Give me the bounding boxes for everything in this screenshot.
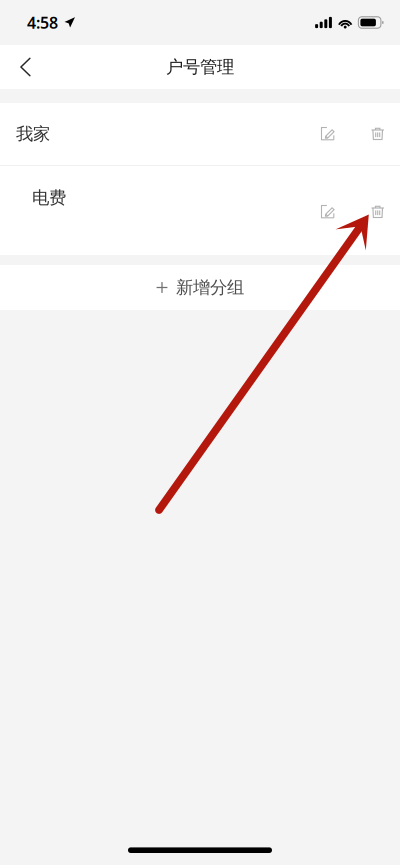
button[interactable]: 编辑	[316, 121, 340, 147]
staticText: 新增分组	[176, 277, 244, 298]
button[interactable]: 删除	[366, 199, 390, 225]
button[interactable]: 新增分组	[0, 265, 400, 310]
button[interactable]: 电费	[0, 166, 400, 255]
button[interactable]: 编辑	[316, 199, 340, 225]
staticText: 我家	[16, 123, 50, 145]
button[interactable]: 删除	[366, 121, 390, 147]
staticText: 电费	[32, 187, 66, 208]
button[interactable]: Back	[3, 45, 47, 89]
button[interactable]: 我家	[0, 103, 400, 165]
staticText: 户号管理	[166, 56, 234, 78]
staticText: 4:58	[27, 12, 58, 33]
